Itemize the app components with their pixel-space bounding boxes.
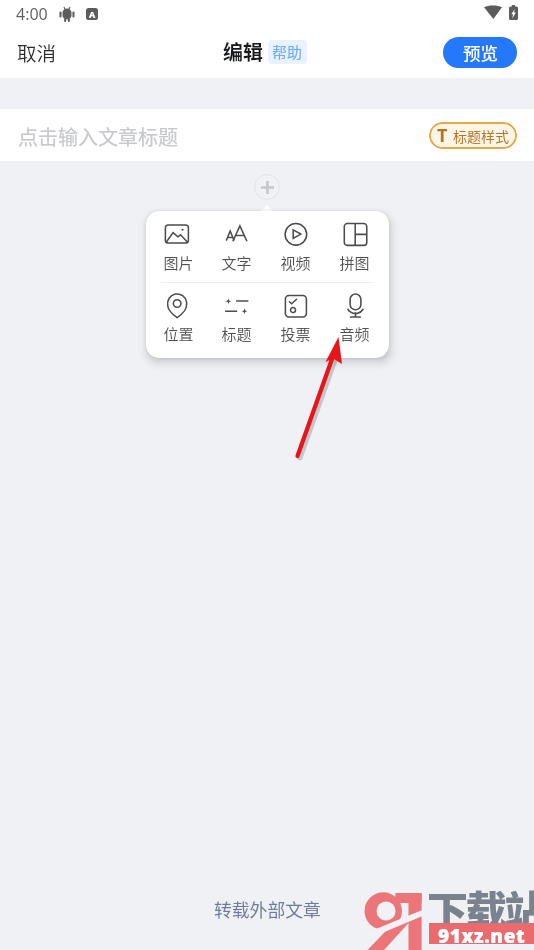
button[interactable]: 视频	[266, 211, 325, 274]
staticText: 4:00	[16, 3, 48, 25]
staticText: 点击输入文章标题	[18, 122, 178, 151]
staticText: 位置	[163, 323, 194, 345]
staticText: 帮助	[272, 41, 303, 63]
button[interactable]: 图片	[149, 211, 207, 274]
staticText: 下载站	[427, 878, 534, 937]
staticText: 预览	[463, 40, 498, 65]
button[interactable]: 帮助	[268, 40, 307, 64]
button[interactable]: Add content	[254, 174, 280, 200]
button[interactable]: 位置	[149, 283, 207, 345]
staticText: A	[89, 8, 96, 20]
button[interactable]: 音频	[325, 283, 384, 345]
button[interactable]: T	[429, 122, 517, 149]
button[interactable]: 文字	[207, 211, 266, 274]
staticText: 转载外部文章	[214, 896, 321, 922]
button[interactable]: 点击输入文章标题	[11, 118, 185, 155]
staticText: 拼图	[339, 252, 370, 274]
staticText: T	[437, 123, 448, 148]
staticText: 标题	[221, 323, 252, 345]
button[interactable]: 取消	[10, 33, 64, 71]
staticText: 取消	[17, 38, 57, 66]
button[interactable]: 转载外部文章	[206, 888, 329, 930]
button[interactable]: 预览	[443, 37, 517, 68]
staticText: 编辑	[223, 37, 263, 66]
button[interactable]: 标题	[207, 283, 266, 345]
staticText: 投票	[280, 323, 311, 345]
staticText: 视频	[280, 252, 311, 274]
button[interactable]: 投票	[266, 283, 325, 345]
staticText: 文字	[221, 252, 252, 274]
button[interactable]: 拼图	[325, 211, 384, 274]
staticText: 图片	[163, 252, 194, 274]
staticText: 音频	[339, 323, 370, 345]
staticText: 91xz.net	[438, 923, 526, 944]
staticText: 标题样式	[453, 126, 509, 146]
